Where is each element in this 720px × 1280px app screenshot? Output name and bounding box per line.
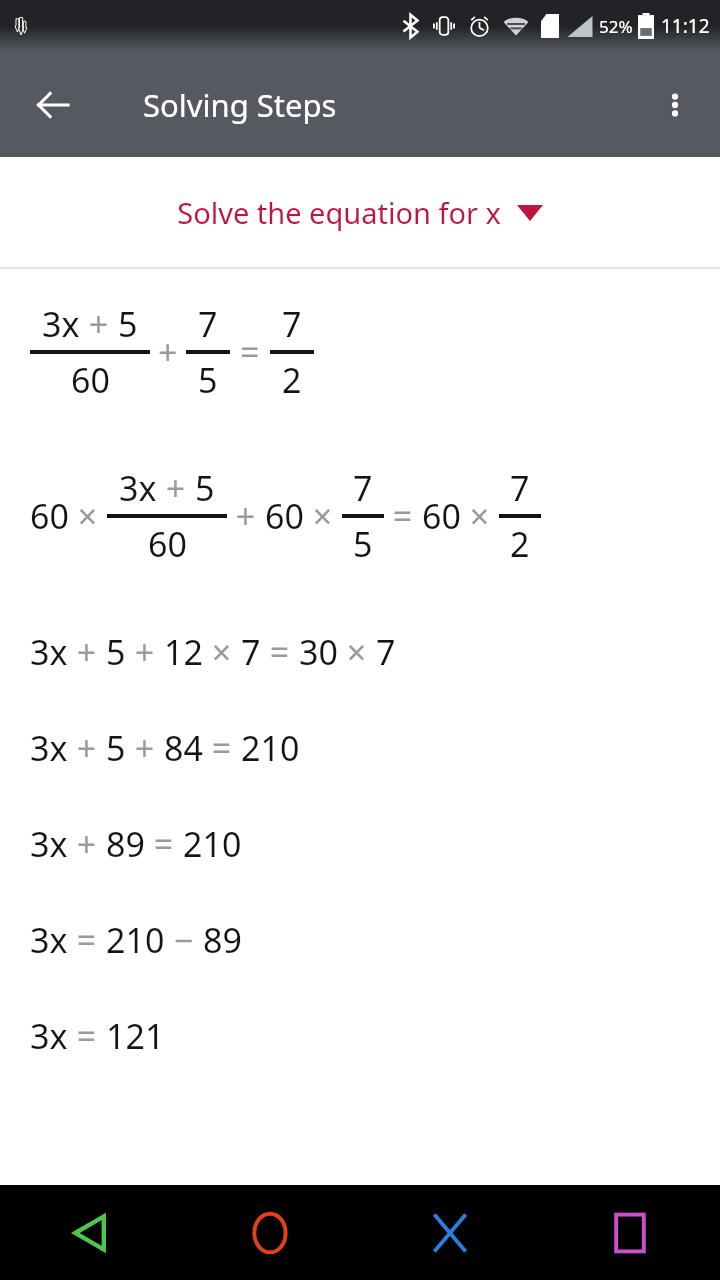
staticText: 5 — [198, 357, 218, 403]
staticText: 210 — [183, 821, 242, 867]
button[interactable]: Back — [18, 70, 88, 140]
staticText: 12 — [164, 629, 203, 675]
staticText: × — [203, 629, 241, 675]
staticText: × — [461, 493, 499, 539]
staticText: 89 — [106, 821, 145, 867]
staticText: 7 — [241, 629, 261, 675]
staticText: × — [338, 629, 376, 675]
staticText: 60 — [265, 493, 304, 539]
staticText: 5 — [118, 301, 138, 347]
staticText: = — [203, 725, 241, 771]
staticText: = — [240, 329, 260, 375]
staticText: 60 — [148, 521, 187, 567]
button[interactable]: More options — [642, 72, 708, 138]
staticText: 84 — [164, 725, 203, 771]
staticText: 210 — [106, 917, 165, 963]
staticText: Solve the equation for x — [177, 193, 501, 232]
staticText: 7 — [353, 465, 373, 511]
staticText: 7 — [282, 301, 302, 347]
staticText: 3x — [30, 629, 68, 675]
staticText: 210 — [241, 725, 300, 771]
staticText: = — [261, 629, 299, 675]
button[interactable]: Close — [360, 1185, 540, 1280]
staticText: = — [68, 917, 106, 963]
staticText: 89 — [203, 917, 242, 963]
staticText: 60 — [71, 357, 110, 403]
button[interactable]: Home — [180, 1185, 360, 1280]
staticText: 3x — [42, 301, 80, 347]
staticText: + — [80, 301, 118, 347]
button[interactable]: Solve the equation for x — [0, 157, 720, 267]
staticText: + — [157, 465, 195, 511]
staticText: = — [384, 493, 422, 539]
staticText: Solving Steps — [143, 84, 337, 126]
staticText: + — [158, 329, 178, 375]
staticText: 7 — [376, 629, 396, 675]
staticText: 3x — [30, 917, 68, 963]
staticText: 7 — [198, 301, 218, 347]
staticText: 2 — [282, 357, 302, 403]
staticText: + — [227, 493, 265, 539]
staticText: 52% — [599, 15, 633, 38]
staticText: + — [68, 629, 106, 675]
staticText: 60 — [30, 493, 69, 539]
staticText: 30 — [299, 629, 338, 675]
staticText: + — [68, 725, 106, 771]
staticText: 5 — [106, 629, 126, 675]
button[interactable]: Recent apps — [540, 1185, 720, 1280]
staticText: 121 — [106, 1013, 165, 1059]
staticText: 11:12 — [661, 13, 710, 39]
staticText: 3x — [30, 725, 68, 771]
staticText: + — [126, 725, 164, 771]
staticText: = — [68, 1013, 106, 1059]
staticText: 2 — [510, 521, 530, 567]
staticText: + — [126, 629, 164, 675]
staticText: × — [69, 493, 107, 539]
staticText: 3x — [119, 465, 157, 511]
staticText: 5 — [195, 465, 215, 511]
staticText: 5 — [106, 725, 126, 771]
staticText: − — [165, 917, 203, 963]
staticText: + — [68, 821, 106, 867]
button[interactable]: Back — [0, 1185, 180, 1280]
staticText: = — [145, 821, 183, 867]
staticText: × — [304, 493, 342, 539]
staticText: 60 — [422, 493, 461, 539]
staticText: 5 — [353, 521, 373, 567]
staticText: 7 — [510, 465, 530, 511]
staticText: 3x — [30, 1013, 68, 1059]
staticText: 3x — [30, 821, 68, 867]
